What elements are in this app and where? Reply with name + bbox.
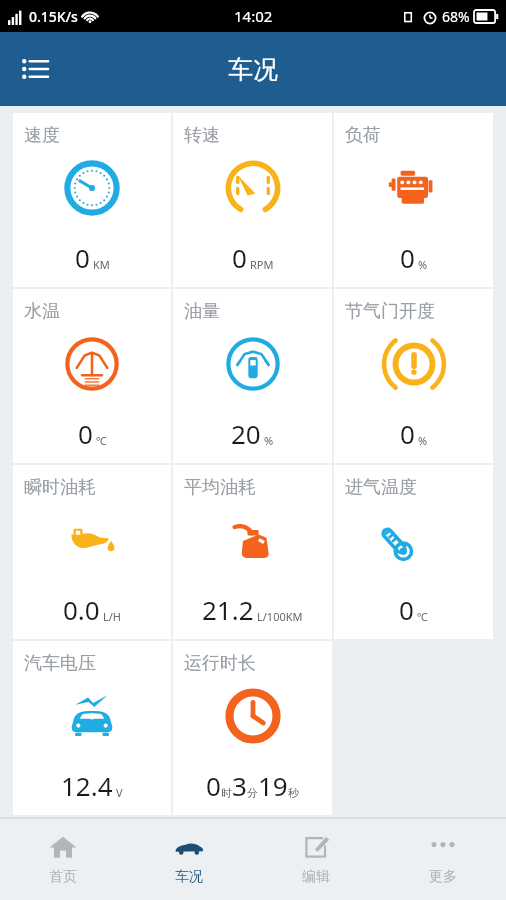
staticText: KM	[93, 257, 110, 272]
staticText: 首页	[49, 868, 77, 886]
button[interactable]: 节气门开度	[334, 289, 493, 463]
staticText: 20	[231, 416, 261, 451]
button[interactable]: 转速	[173, 113, 332, 287]
staticText: 时	[221, 786, 232, 800]
staticText: V	[116, 785, 123, 800]
staticText: 3	[232, 768, 247, 803]
button[interactable]: 运行时长	[173, 641, 332, 815]
staticText: 14:02	[234, 6, 273, 26]
button[interactable]: 油量	[173, 289, 332, 463]
staticText: 0	[232, 240, 247, 275]
staticText: 0	[400, 240, 415, 275]
staticText: %	[418, 257, 428, 272]
button[interactable]: 进气温度	[334, 465, 493, 639]
button[interactable]: 汽车电压	[13, 641, 171, 815]
staticText: 0	[400, 416, 415, 451]
staticText: 速度	[24, 124, 60, 147]
staticText: L/H	[103, 609, 122, 624]
staticText: 进气温度	[345, 476, 417, 499]
button[interactable]: 平均油耗	[173, 465, 332, 639]
staticText: 水温	[24, 300, 60, 323]
staticText: 转速	[184, 124, 220, 147]
staticText: 0.0	[63, 592, 100, 627]
staticText: 21.2	[202, 592, 254, 627]
staticText: 瞬时油耗	[24, 476, 96, 499]
button[interactable]: 更多	[379, 818, 506, 900]
button[interactable]: 水温	[13, 289, 171, 463]
staticText: 12.4	[61, 768, 113, 803]
staticText: RPM	[250, 257, 274, 272]
button[interactable]: 车况	[126, 818, 252, 900]
staticText: L/100KM	[257, 609, 303, 624]
button[interactable]: 编辑	[252, 818, 379, 900]
staticText: 0.15K/s	[29, 7, 78, 26]
staticText: 分	[247, 786, 258, 800]
staticText: 编辑	[302, 868, 330, 886]
button[interactable]: 速度	[13, 113, 171, 287]
staticText: 车况	[228, 54, 278, 85]
staticText: ℃	[96, 433, 107, 448]
button[interactable]: 负荷	[334, 113, 493, 287]
staticText: 平均油耗	[184, 476, 256, 499]
staticText: 汽车电压	[24, 652, 96, 675]
staticText: 68%	[442, 7, 470, 26]
staticText: %	[418, 433, 428, 448]
button[interactable]: 瞬时油耗	[13, 465, 171, 639]
staticText: 负荷	[345, 124, 381, 147]
staticText: 油量	[184, 300, 220, 323]
button[interactable]: Menu	[12, 46, 58, 92]
staticText: 节气门开度	[345, 300, 435, 323]
staticText: 0	[78, 416, 93, 451]
staticText: ℃	[417, 609, 428, 624]
staticText: 19	[258, 768, 288, 803]
button[interactable]: 首页	[0, 818, 126, 900]
staticText: 0	[399, 592, 414, 627]
staticText: 0	[206, 768, 221, 803]
staticText: 秒	[288, 786, 299, 800]
staticText: 运行时长	[184, 652, 256, 675]
staticText: 更多	[429, 868, 457, 886]
staticText: 0	[75, 240, 90, 275]
staticText: 车况	[175, 868, 203, 886]
staticText: %	[264, 433, 274, 448]
